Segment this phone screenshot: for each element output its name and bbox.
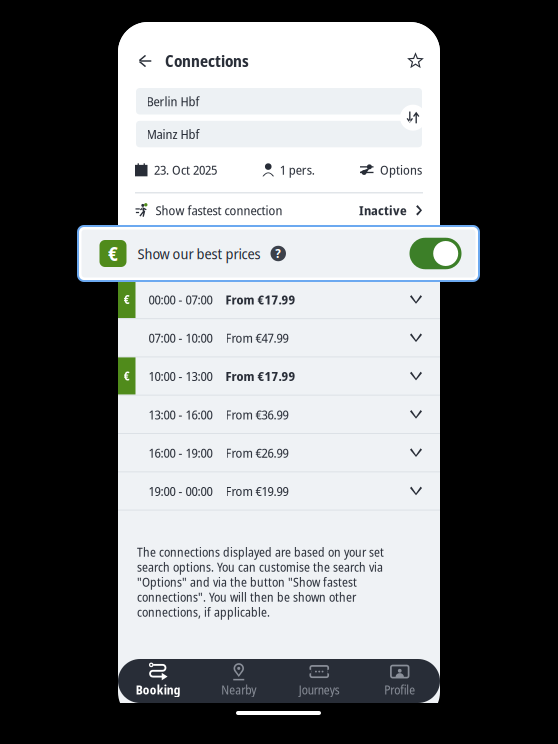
- staticText: Booking: [136, 682, 181, 698]
- button[interactable]: 16:00 - 19:00: [118, 434, 440, 471]
- button[interactable]: More information about best prices: [270, 246, 286, 261]
- button[interactable]: Options: [360, 147, 422, 192]
- button[interactable]: Booking: [118, 659, 198, 703]
- staticText: From €17.99: [225, 291, 295, 308]
- staticText: Show our best prices: [137, 243, 260, 264]
- button[interactable]: €: [118, 281, 440, 318]
- button[interactable]: 13:00 - 16:00: [118, 396, 440, 433]
- staticText: The connections displayed are based on y…: [137, 544, 384, 620]
- staticText: 07:00 - 10:00: [148, 329, 212, 347]
- staticText: 10:00 - 13:00: [148, 367, 212, 385]
- button[interactable]: 23. Oct 2025: [135, 147, 217, 192]
- staticText: Profile: [384, 682, 415, 698]
- button[interactable]: Show our best prices, on: [409, 238, 461, 269]
- button[interactable]: Profile: [359, 659, 440, 703]
- staticText: 19:00 - 00:00: [148, 482, 212, 500]
- staticText: From €19.99: [225, 482, 288, 500]
- button[interactable]: Swap stations: [399, 104, 427, 132]
- staticText: 23. Oct 2025: [154, 161, 217, 179]
- staticText: Options: [380, 161, 422, 179]
- staticText: 1 pers.: [280, 161, 315, 179]
- button[interactable]: €: [118, 357, 440, 395]
- staticText: ?: [275, 244, 281, 262]
- staticText: Nearby: [221, 682, 256, 698]
- button[interactable]: 07:00 - 10:00: [118, 319, 440, 356]
- staticText: Berlin Hbf: [146, 92, 199, 110]
- staticText: 13:00 - 16:00: [148, 405, 212, 423]
- staticText: From €47.99: [225, 329, 288, 347]
- staticText: Mainz Hbf: [146, 125, 199, 143]
- staticText: Journeys: [299, 682, 340, 698]
- button[interactable]: Journeys: [279, 659, 359, 703]
- staticText: 16:00 - 19:00: [148, 444, 212, 462]
- staticText: From €36.99: [225, 405, 288, 423]
- button[interactable]: Show fastest connection: [118, 193, 440, 227]
- staticText: From €17.99: [225, 367, 295, 385]
- button[interactable]: 19:00 - 00:00: [118, 472, 440, 510]
- button[interactable]: Berlin Hbf: [136, 88, 422, 114]
- button[interactable]: Mainz Hbf: [136, 121, 422, 147]
- staticText: Inactive: [359, 202, 407, 219]
- staticText: €: [124, 368, 130, 384]
- staticText: Connections: [165, 50, 249, 72]
- staticText: Show fastest connection: [155, 201, 282, 219]
- button[interactable]: Back: [127, 41, 163, 81]
- button[interactable]: Nearby: [198, 659, 279, 703]
- staticText: €: [124, 292, 130, 307]
- staticText: €: [108, 240, 118, 267]
- button[interactable]: Add to favourites: [398, 41, 434, 81]
- staticText: From €26.99: [225, 444, 288, 462]
- button[interactable]: 1 pers.: [262, 147, 315, 192]
- staticText: 00:00 - 07:00: [148, 291, 212, 308]
